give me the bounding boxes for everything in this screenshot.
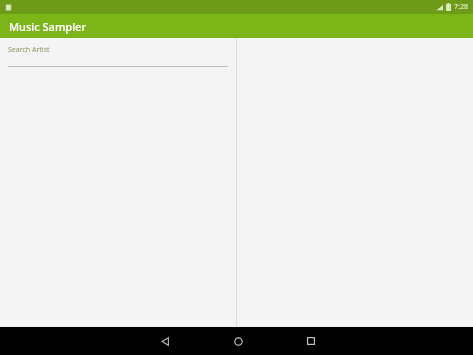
staticText: Search Artist [8, 45, 50, 55]
button[interactable]: Back [153, 329, 177, 353]
button[interactable]: Search Artist [8, 45, 228, 67]
staticText: 7:28 [454, 2, 468, 12]
staticText: Music Sampler [9, 19, 87, 34]
button[interactable]: Recent apps [299, 329, 323, 353]
button[interactable]: Home [226, 329, 250, 353]
